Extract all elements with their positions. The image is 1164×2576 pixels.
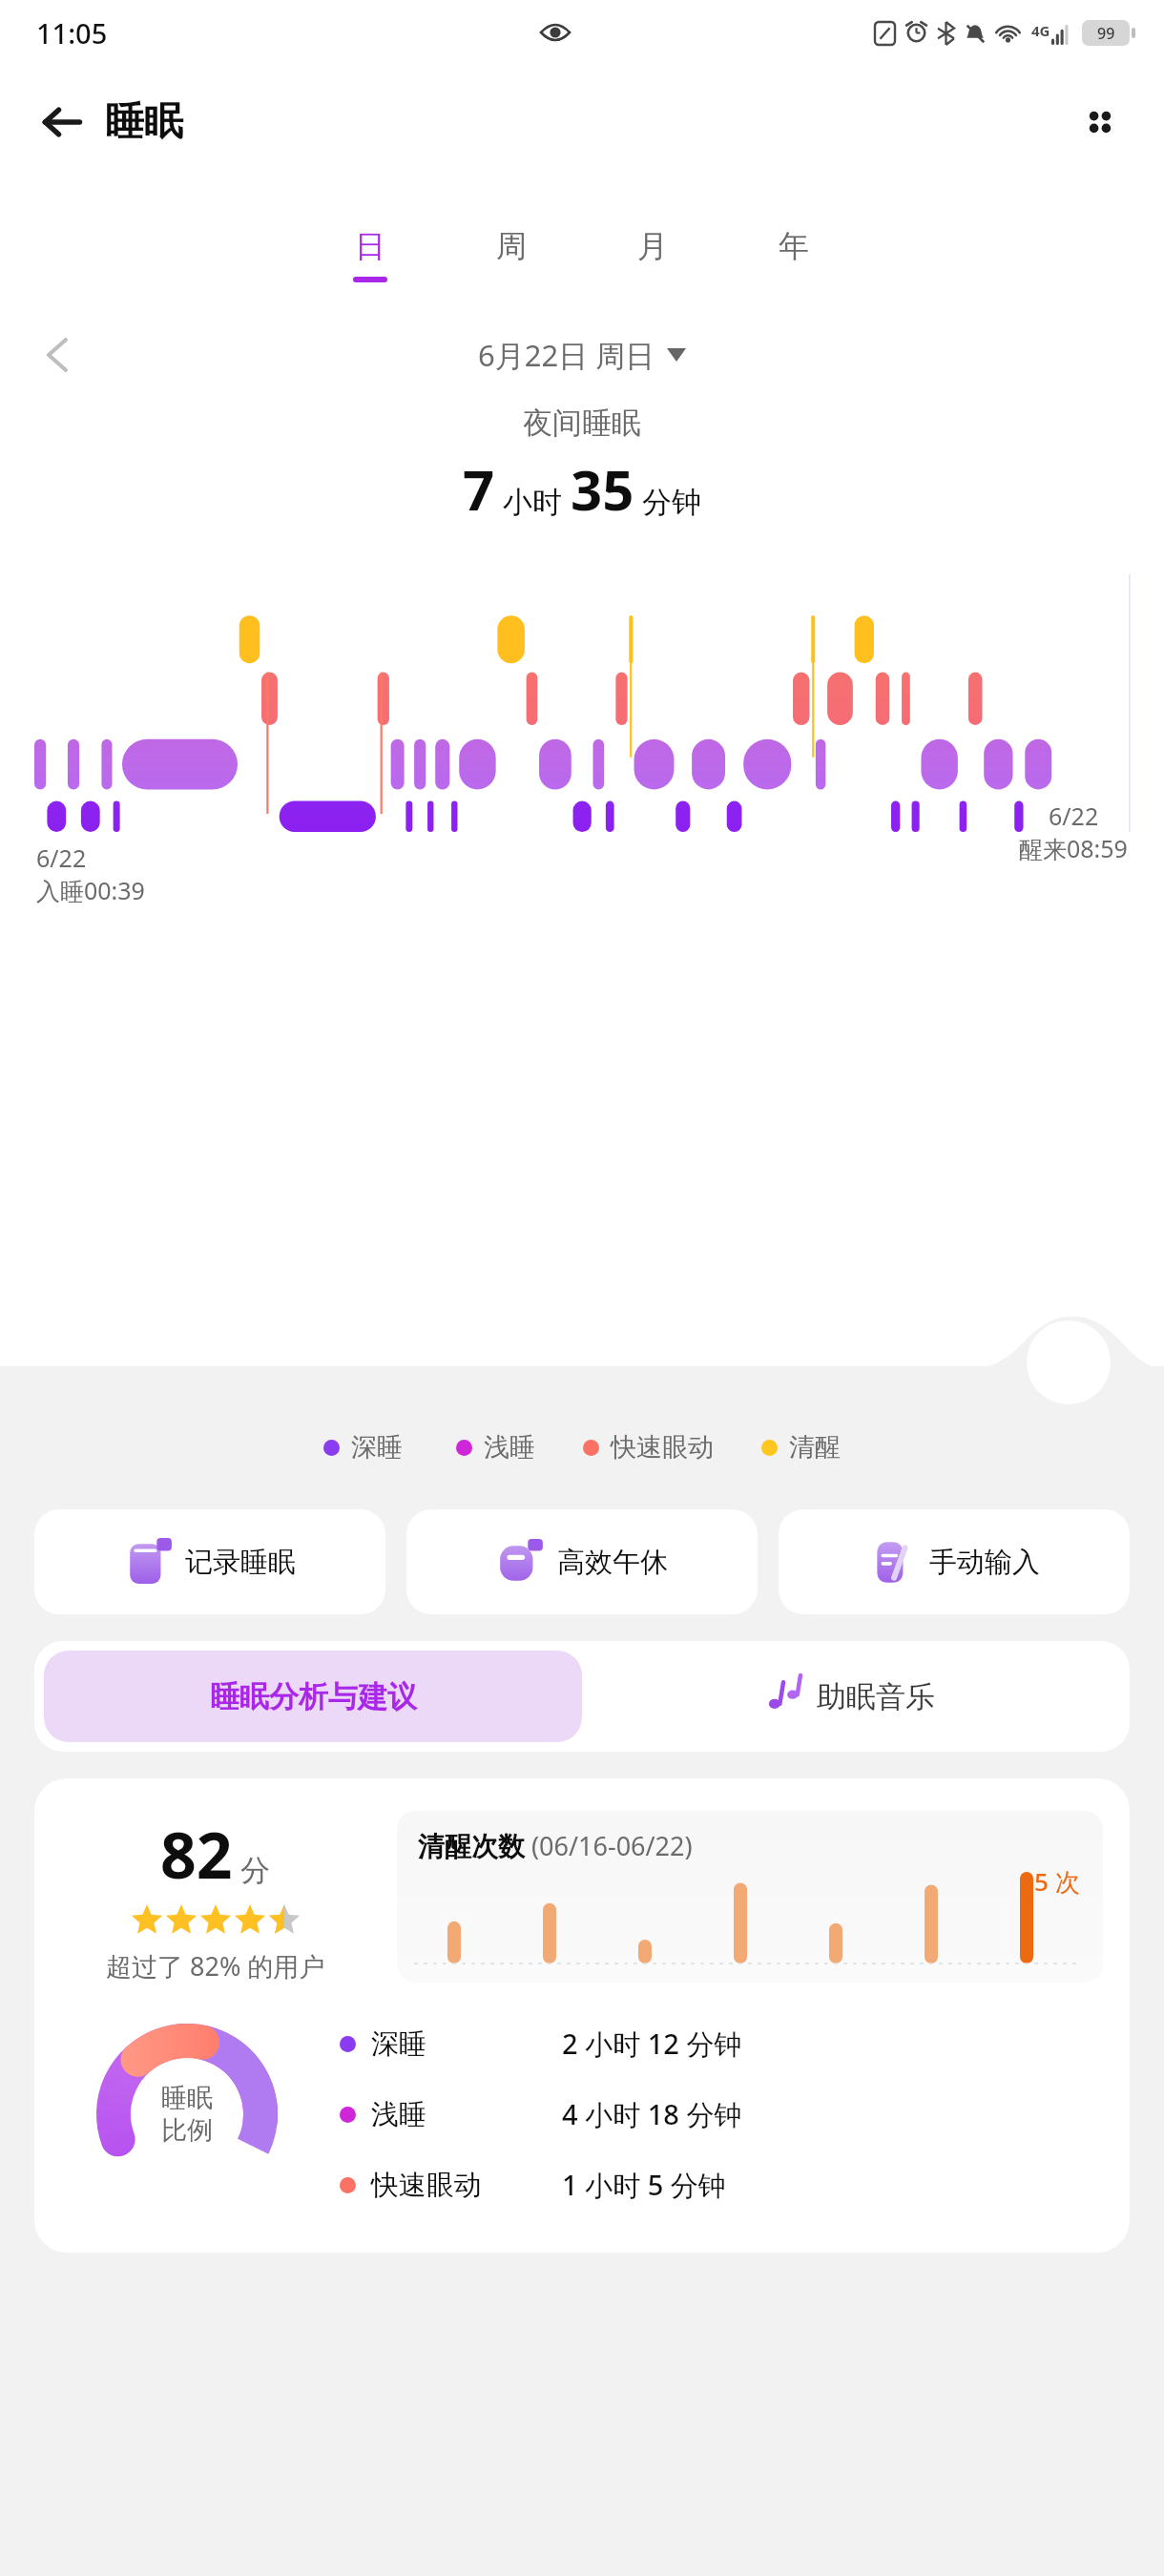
button[interactable]: 助眠音乐 (582, 1651, 1120, 1742)
staticText: 分钟 (634, 481, 702, 521)
staticText: 2 小时 12 分钟 (562, 2025, 742, 2063)
button[interactable]: 手动输入 (779, 1509, 1130, 1614)
staticText: 清醒 (789, 1431, 841, 1464)
staticText: (06/16-06/22) (525, 1828, 693, 1863)
staticText: 记录睡眠 (185, 1545, 296, 1580)
button[interactable]: Back (27, 87, 97, 157)
button[interactable]: 周 (441, 227, 582, 282)
button[interactable]: 月 (582, 227, 723, 282)
staticText: 深睡 (371, 2026, 562, 2062)
staticText: 睡眠分析与建议 (210, 1678, 417, 1715)
button[interactable]: Sleep settings (1027, 1320, 1111, 1404)
staticText: 日 (355, 227, 385, 265)
staticText: 1 小时 5 分钟 (562, 2166, 726, 2204)
staticText: 比例 (161, 2114, 213, 2147)
staticText: 4G (1031, 21, 1050, 40)
staticText: 小时 (495, 481, 571, 521)
staticText: 分 (233, 1849, 271, 1889)
staticText: 6/22 (36, 841, 87, 874)
staticText: 7 (463, 451, 495, 527)
button[interactable]: 睡眠分析与建议 (44, 1651, 582, 1742)
button[interactable]: More options (1065, 87, 1135, 157)
staticText: 清醒次数 (418, 1830, 525, 1863)
button[interactable]: 年 (723, 227, 864, 282)
staticText: 82 (160, 1811, 233, 1897)
staticText: 周 (496, 227, 527, 265)
staticText: 睡眠 (161, 2082, 213, 2114)
button[interactable]: 6月22日 周日 (478, 335, 686, 375)
staticText: 手动输入 (929, 1545, 1040, 1580)
staticText: 浅睡 (484, 1431, 535, 1464)
staticText: 5 次 (1034, 1864, 1080, 1899)
staticText: 快速眼动 (611, 1431, 714, 1464)
staticText: 6/22 (1049, 800, 1099, 832)
staticText: 深睡 (351, 1431, 403, 1464)
staticText: 99 (1097, 23, 1115, 44)
staticText: 4 小时 18 分钟 (562, 2095, 742, 2133)
staticText: 35 (571, 451, 634, 527)
staticText: 浅睡 (371, 2097, 562, 2132)
button[interactable]: Previous day (29, 326, 86, 384)
button[interactable]: 清醒次数 (397, 1811, 1103, 1983)
staticText: 睡眠 (105, 97, 183, 147)
staticText: 快速眼动 (371, 2168, 562, 2203)
staticText: 高效午休 (557, 1545, 668, 1580)
button[interactable]: 记录睡眠 (34, 1509, 385, 1614)
staticText: 月 (637, 227, 668, 265)
staticText: 11:05 (36, 14, 108, 52)
staticText: 超过了 82% 的用户 (106, 1948, 325, 1984)
staticText: 6月22日 周日 (478, 335, 655, 375)
button[interactable]: 高效午休 (406, 1509, 758, 1614)
staticText: 夜间睡眠 (0, 405, 1164, 442)
staticText: 年 (779, 227, 809, 265)
staticText: 醒来08:59 (1019, 832, 1128, 864)
staticText: 入睡00:39 (36, 874, 145, 906)
staticText: 助眠音乐 (817, 1678, 935, 1715)
button[interactable]: 日 (300, 227, 441, 282)
